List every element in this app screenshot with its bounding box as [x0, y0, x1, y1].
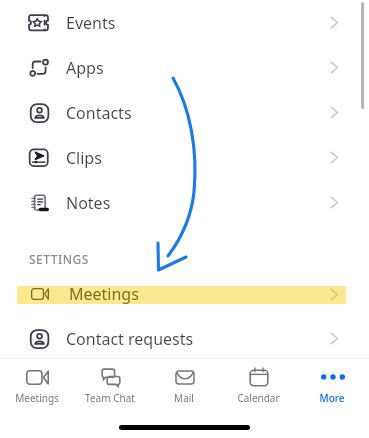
button[interactable]: Contacts — [0, 90, 369, 135]
button[interactable]: Apps — [0, 45, 369, 90]
staticText: Calendar — [237, 391, 280, 405]
staticText: Contact requests — [66, 328, 194, 350]
button[interactable]: More — [295, 359, 369, 438]
staticText: Meetings — [15, 391, 59, 405]
button[interactable]: Meetings — [0, 359, 73, 438]
button[interactable]: Meetings — [0, 271, 369, 316]
staticText: SETTINGS — [29, 251, 89, 267]
button[interactable]: Mail — [147, 359, 221, 438]
staticText: Meetings — [69, 283, 139, 305]
button[interactable]: Team Chat — [73, 359, 147, 438]
staticText: Apps — [66, 57, 104, 79]
button[interactable]: Clips — [0, 135, 369, 180]
button[interactable]: Calendar — [221, 359, 295, 438]
button[interactable]: Events — [0, 0, 369, 45]
button[interactable]: Notes — [0, 180, 369, 225]
staticText: Team Chat — [85, 391, 135, 405]
staticText: More — [319, 391, 345, 405]
staticText: Events — [66, 12, 116, 34]
staticText: Contacts — [66, 102, 132, 124]
staticText: Mail — [174, 391, 194, 405]
staticText: Clips — [66, 147, 102, 169]
button[interactable]: Contact requests — [0, 316, 369, 361]
staticText: Notes — [66, 192, 111, 214]
